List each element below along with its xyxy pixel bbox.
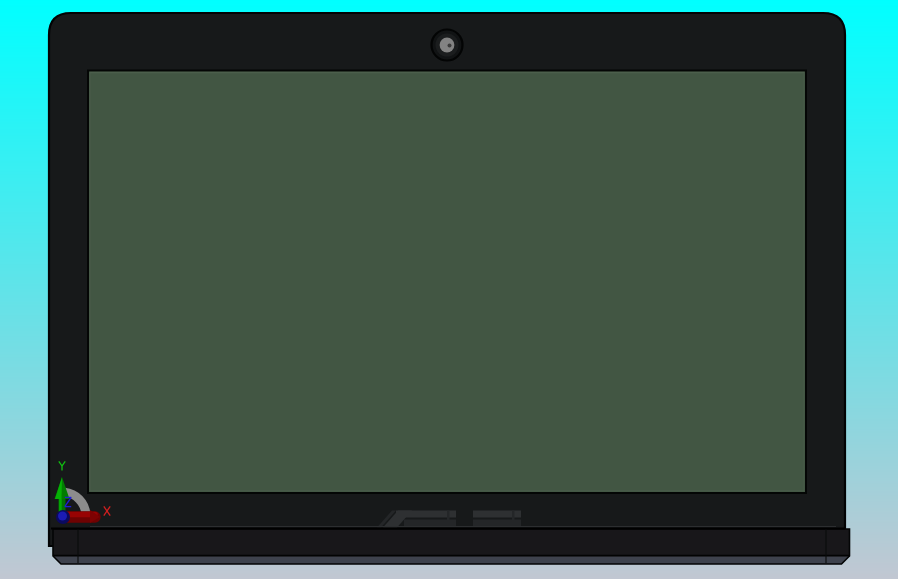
button[interactable]: 3D viewport [89, 72, 805, 493]
button[interactable]: Orientation axes gizmo [49, 458, 117, 528]
button[interactable]: Webcam [431, 29, 463, 61]
